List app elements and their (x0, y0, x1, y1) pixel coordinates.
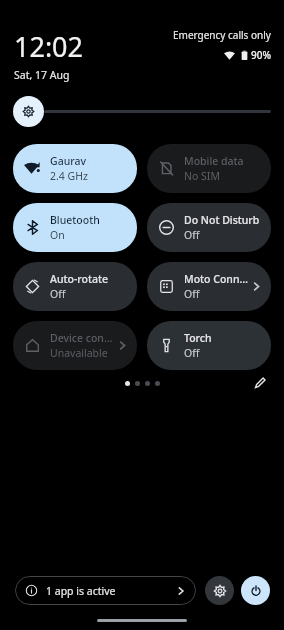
staticText: Off (50, 287, 66, 301)
staticText: Mobile data (184, 154, 244, 168)
staticText: Auto-rotate (50, 272, 108, 286)
button[interactable]: Torch (147, 321, 271, 370)
button[interactable]: Device contr… (13, 321, 137, 370)
staticText: 2.4 GHz (50, 169, 88, 183)
staticText: No SIM (184, 169, 220, 183)
staticText: Emergency calls only (173, 28, 271, 42)
button[interactable]: Auto-rotate (13, 262, 137, 311)
staticText: Torch (184, 331, 212, 345)
staticText: Off (184, 346, 200, 360)
staticText: 90% (251, 48, 271, 62)
staticText: Bluetooth (50, 213, 100, 227)
staticText: Gaurav (50, 154, 86, 168)
button[interactable]: Edit tiles (249, 372, 271, 394)
staticText: Sat, 17 Aug (14, 68, 70, 82)
button[interactable]: Do Not Disturb (147, 203, 271, 252)
button[interactable]: Power (241, 576, 270, 605)
staticText: Off (184, 287, 200, 301)
staticText: 12:02 (14, 28, 84, 65)
staticText: 1 app is active (46, 584, 116, 598)
staticText: Off (184, 228, 200, 242)
button[interactable]: Mobile data (147, 144, 271, 193)
staticText: Moto Connect (184, 272, 250, 286)
staticText: On (50, 228, 65, 242)
button[interactable]: Settings (205, 576, 234, 605)
button[interactable]: Gaurav (13, 144, 137, 193)
staticText: Unavailable (50, 346, 108, 360)
button[interactable]: Bluetooth (13, 203, 137, 252)
button[interactable]: Brightness (13, 96, 44, 127)
staticText: Device contr… (50, 331, 116, 345)
button[interactable]: Moto Connect (147, 262, 271, 311)
button[interactable]: 1 app is active (15, 576, 196, 605)
staticText: Do Not Disturb (184, 213, 260, 227)
